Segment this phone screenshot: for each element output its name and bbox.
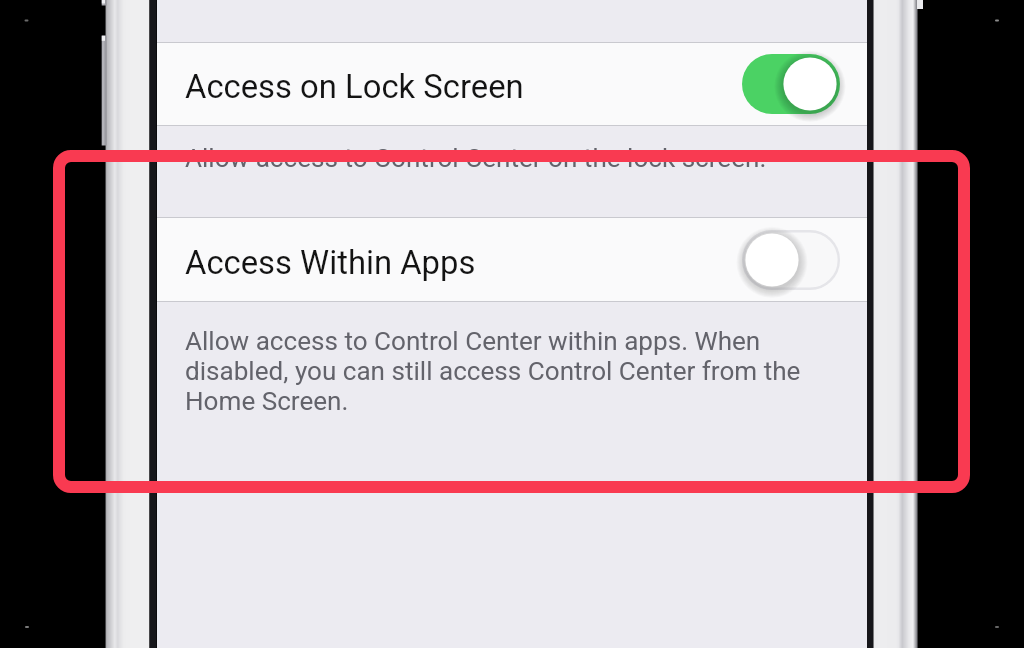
button[interactable]: Disabled toggle [742, 230, 840, 290]
button[interactable]: Enabled toggle [742, 54, 840, 114]
button[interactable]: Access on Lock Screen [157, 42, 867, 126]
staticText: Allow access to Control Center on the lo… [185, 143, 767, 173]
staticText: Access Within Apps [185, 244, 476, 282]
staticText: Access on Lock Screen [185, 68, 524, 106]
button[interactable]: Access Within Apps [157, 217, 867, 302]
staticText: Allow access to Control Center within ap… [185, 326, 811, 416]
